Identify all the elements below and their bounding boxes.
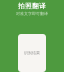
staticText: 对准文字即可翻译	[16, 11, 48, 16]
staticText: 拍照翻译	[18, 2, 46, 10]
staticText: 识别结果	[24, 50, 40, 55]
